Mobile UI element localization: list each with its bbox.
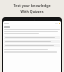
staticText: Test your knowledge — [13, 3, 51, 8]
staticText: With Quizzes — [20, 9, 44, 14]
button[interactable] — [4, 36, 60, 39]
button[interactable] — [4, 40, 60, 43]
button[interactable] — [4, 44, 60, 47]
